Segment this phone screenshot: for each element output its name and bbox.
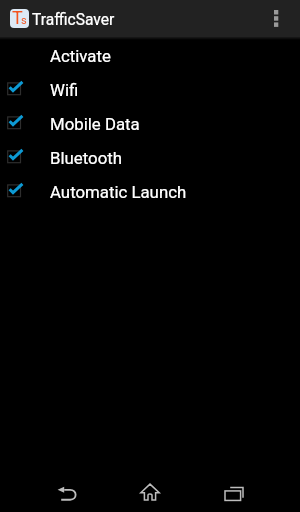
button[interactable]: Mobile Data xyxy=(0,106,300,140)
button[interactable]: Automatic Launch xyxy=(0,174,300,208)
staticText: TrafficSaver xyxy=(32,11,115,29)
button[interactable]: More options xyxy=(259,0,299,37)
staticText: s xyxy=(21,14,27,27)
staticText: Automatic Launch xyxy=(50,182,187,202)
staticText: Wifi xyxy=(50,80,79,100)
button[interactable]: Back xyxy=(42,474,91,511)
staticText: Mobile Data xyxy=(50,114,140,134)
staticText: Bluetooth xyxy=(50,148,122,168)
button[interactable]: Home xyxy=(125,473,174,510)
staticText: T xyxy=(12,9,23,26)
button[interactable]: Bluetooth xyxy=(0,140,300,174)
button[interactable]: Activate xyxy=(0,38,300,72)
button[interactable]: Recents xyxy=(209,475,258,512)
button[interactable]: Wifi xyxy=(0,72,300,106)
staticText: Activate xyxy=(50,46,111,66)
